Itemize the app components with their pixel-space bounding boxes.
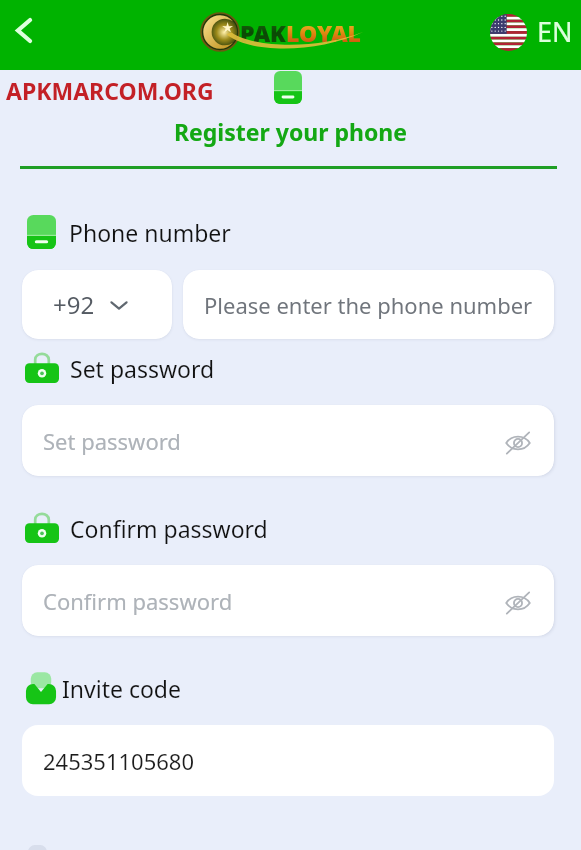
button[interactable]: Set password <box>22 405 554 476</box>
staticText: Confirm password <box>70 513 268 544</box>
button[interactable]: Confirm password <box>22 565 554 636</box>
staticText: +92 <box>53 288 95 321</box>
button[interactable]: Show password <box>500 425 536 461</box>
staticText: APKMARCOM.ORG <box>6 75 214 106</box>
staticText: LOYAL <box>286 17 362 48</box>
staticText: Invite code <box>62 673 181 704</box>
button[interactable]: EN <box>490 14 573 51</box>
button[interactable]: +92 <box>22 270 172 339</box>
button[interactable]: Please enter the phone number <box>183 270 554 339</box>
staticText: Register your phone <box>0 116 581 147</box>
button[interactable]: 245351105680 <box>22 725 554 796</box>
staticText: Set password <box>70 353 215 384</box>
staticText: Phone number <box>69 217 231 248</box>
staticText: Confirm password <box>43 586 233 616</box>
button[interactable]: Show password <box>500 585 536 621</box>
staticText: PAK <box>240 17 286 48</box>
staticText: Set password <box>43 426 181 456</box>
staticText: 245351105680 <box>43 746 195 776</box>
staticText: EN <box>537 13 573 50</box>
staticText: Please enter the phone number <box>204 290 533 320</box>
button[interactable]: Back <box>1 7 47 53</box>
